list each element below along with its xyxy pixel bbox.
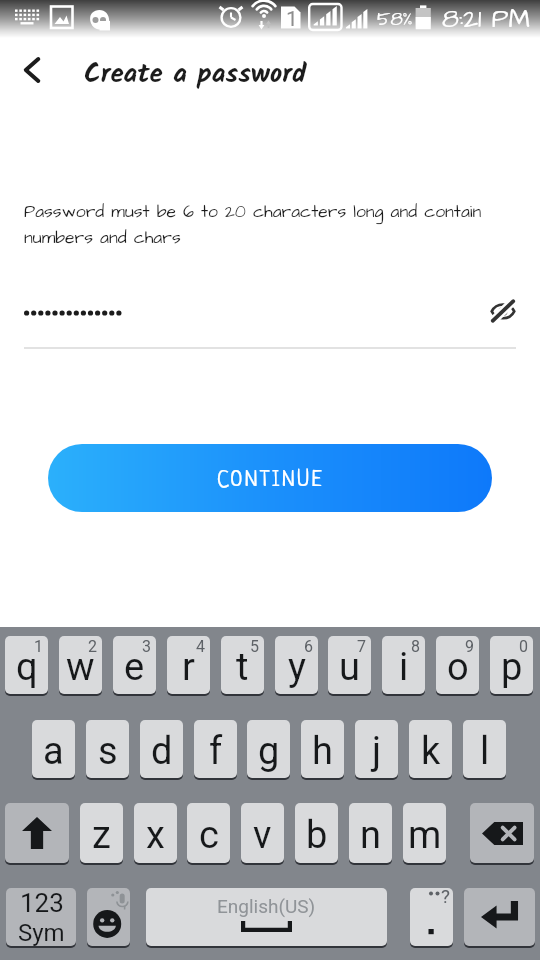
button[interactable]: 123 xyxy=(6,888,76,946)
button[interactable]: a xyxy=(32,720,75,778)
button[interactable]: o xyxy=(436,636,479,694)
staticText: 6 xyxy=(304,637,313,656)
button[interactable]: v xyxy=(241,803,284,863)
button[interactable]: c xyxy=(187,803,230,863)
staticText: j xyxy=(372,729,382,774)
button[interactable]: j xyxy=(355,720,398,778)
staticText: f xyxy=(209,729,223,774)
button[interactable]: n xyxy=(349,803,392,863)
staticText: 0 xyxy=(519,637,528,656)
staticText: i xyxy=(399,645,409,690)
staticText: s xyxy=(98,729,118,774)
staticText: English(US) xyxy=(217,895,316,917)
staticText: u xyxy=(339,645,360,690)
button[interactable]: g xyxy=(247,720,290,778)
button[interactable] xyxy=(464,888,535,946)
button[interactable]: Show password xyxy=(484,292,522,330)
button[interactable]: k xyxy=(409,720,452,778)
button[interactable] xyxy=(5,803,69,863)
staticText: 9 xyxy=(465,637,474,656)
button[interactable]: f xyxy=(194,720,237,778)
staticText: 7 xyxy=(357,637,366,656)
staticText: k xyxy=(421,729,441,774)
staticText: g xyxy=(258,729,280,774)
staticText: t xyxy=(236,645,249,690)
staticText: 1 xyxy=(286,7,298,32)
button[interactable]: w xyxy=(59,636,102,694)
button[interactable] xyxy=(87,888,130,946)
button[interactable]: CONTINUE xyxy=(48,444,492,512)
button[interactable]: i xyxy=(382,636,425,694)
staticText: c xyxy=(199,813,219,858)
staticText: z xyxy=(92,813,111,858)
button[interactable]: Show password xyxy=(0,285,540,349)
button[interactable]: English(US) xyxy=(146,888,387,946)
staticText: w xyxy=(66,645,95,690)
staticText: 4 xyxy=(196,637,205,656)
staticText: r xyxy=(182,645,195,690)
staticText: p xyxy=(501,645,523,690)
button[interactable] xyxy=(470,803,534,863)
staticText: x xyxy=(146,813,165,858)
button[interactable]: z xyxy=(80,803,123,863)
staticText: a xyxy=(43,729,64,774)
button[interactable]: y xyxy=(275,636,318,694)
staticText: v xyxy=(253,813,272,858)
staticText: 5 xyxy=(250,637,259,656)
button[interactable]: d xyxy=(140,720,183,778)
button[interactable]: h xyxy=(301,720,344,778)
staticText: b xyxy=(306,813,328,858)
staticText: y xyxy=(288,645,306,690)
staticText: ? xyxy=(441,888,450,907)
staticText: 1 xyxy=(34,637,43,656)
button[interactable]: u xyxy=(328,636,371,694)
staticText: 8:21 PM xyxy=(442,1,530,37)
staticText: h xyxy=(312,729,333,774)
button[interactable]: m xyxy=(403,803,446,863)
staticText: d xyxy=(151,729,173,774)
button[interactable]: ? xyxy=(410,888,453,946)
staticText: Create a password xyxy=(84,53,307,96)
staticText: Sym xyxy=(18,919,65,946)
staticText: Password must be 6 to 20 characters long… xyxy=(24,200,504,251)
button[interactable]: l xyxy=(463,720,506,778)
staticText: o xyxy=(447,645,469,690)
staticText: n xyxy=(360,813,381,858)
button[interactable]: Back xyxy=(6,45,56,95)
button[interactable]: b xyxy=(295,803,338,863)
staticText: CONTINUE xyxy=(217,468,325,492)
staticText: 2 xyxy=(88,637,97,656)
staticText: m xyxy=(408,813,442,858)
staticText: l xyxy=(480,729,490,774)
staticText: 3 xyxy=(142,637,151,656)
staticText: e xyxy=(124,645,145,690)
button[interactable]: r xyxy=(167,636,210,694)
staticText: 58% xyxy=(377,6,413,32)
button[interactable]: s xyxy=(86,720,129,778)
staticText: q xyxy=(16,645,38,690)
button[interactable]: p xyxy=(490,636,533,694)
button[interactable]: x xyxy=(134,803,177,863)
button[interactable]: e xyxy=(113,636,156,694)
staticText: 123 xyxy=(20,888,64,918)
button[interactable]: t xyxy=(221,636,264,694)
button[interactable]: q xyxy=(5,636,48,694)
staticText: 8 xyxy=(411,637,420,656)
